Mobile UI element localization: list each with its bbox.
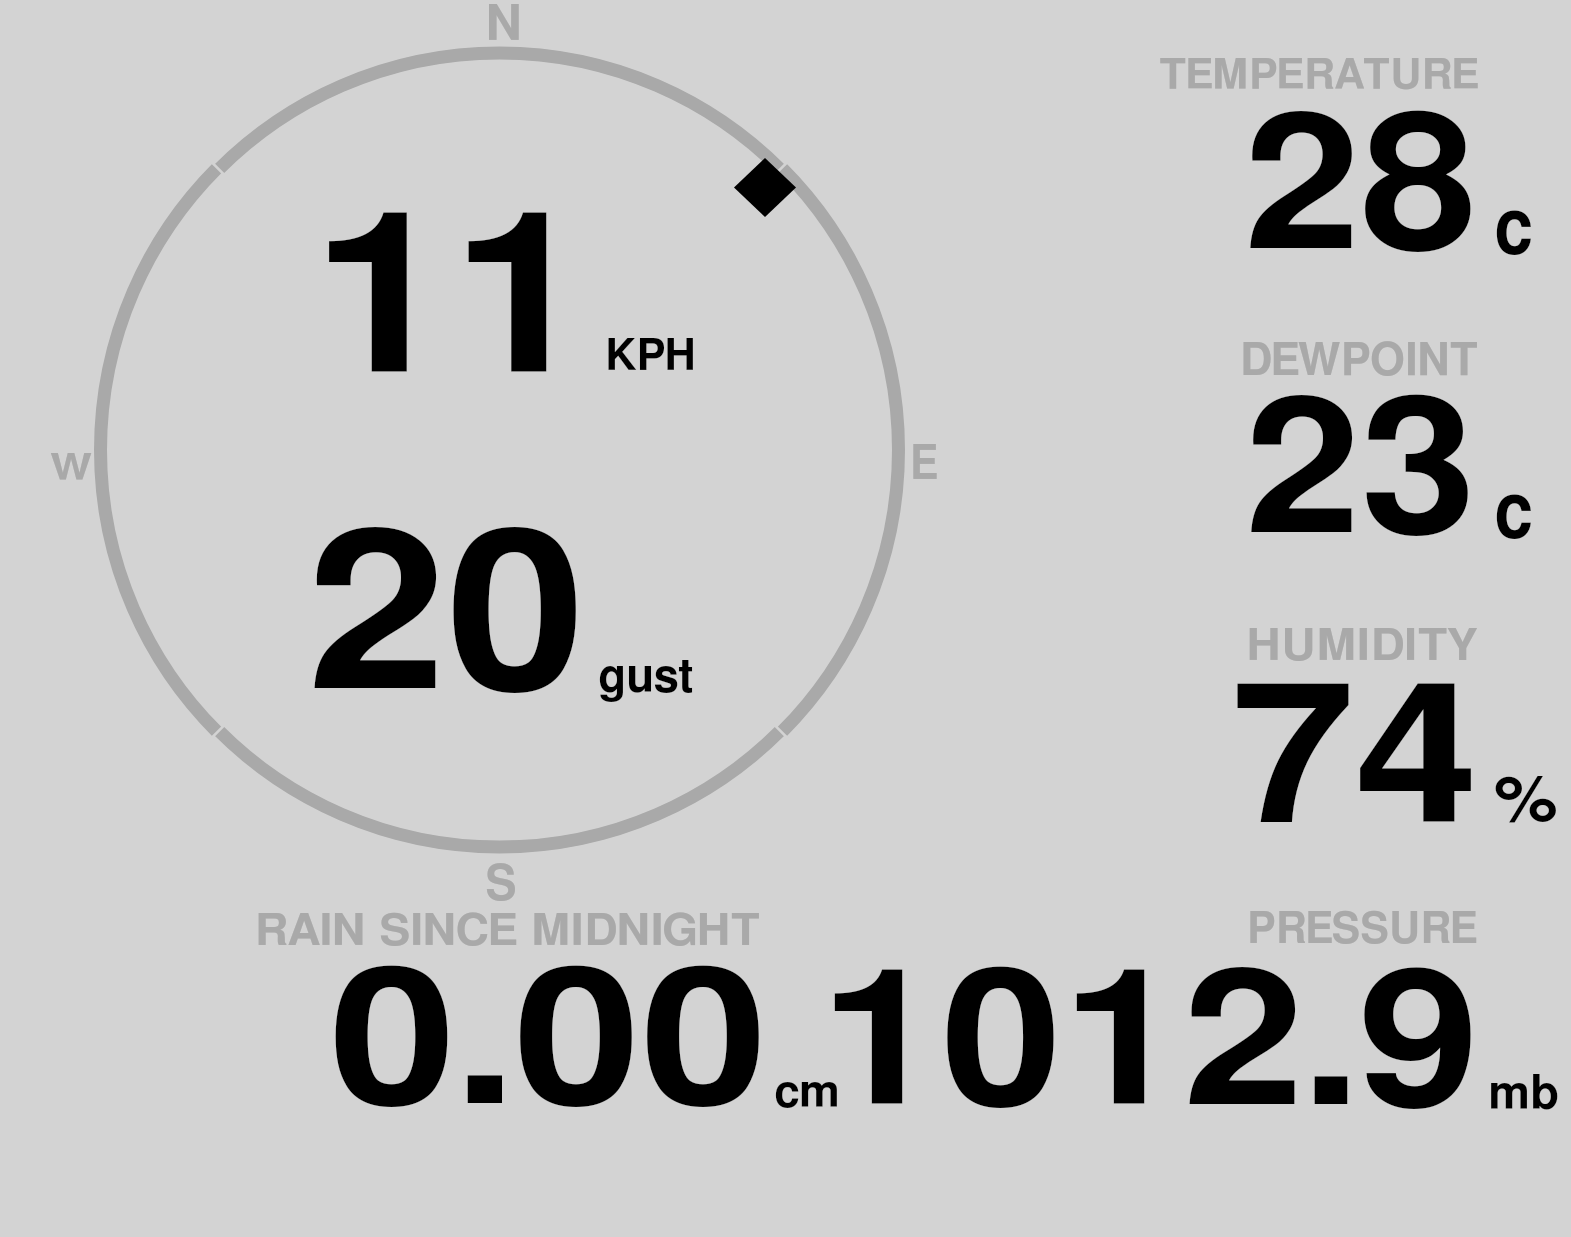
staticText: E <box>910 441 939 488</box>
staticText: 0.00 <box>329 951 768 1141</box>
staticText: % <box>1494 770 1559 834</box>
staticText: KPH <box>605 335 697 379</box>
staticText: 23 <box>1245 381 1476 570</box>
staticText: W <box>50 451 93 488</box>
staticText: 11 <box>312 193 591 417</box>
staticText: HUMIDITY <box>1246 625 1478 669</box>
staticText: DEWPOINT <box>1240 339 1479 383</box>
button[interactable]: PRESSURE <box>820 900 1571 1130</box>
button[interactable]: TEMPERATURE <box>1130 40 1571 280</box>
staticText: 20 <box>307 510 586 732</box>
staticText: mb <box>1488 1071 1560 1118</box>
staticText: N <box>485 1 523 50</box>
staticText: RAIN SINCE MIDNIGHT <box>255 910 761 953</box>
button[interactable]: DEWPOINT <box>1130 325 1571 565</box>
staticText: c <box>1494 475 1533 553</box>
button[interactable]: RAIN SINCE MIDNIGHT <box>240 900 850 1130</box>
staticText: 1012.9 <box>820 953 1479 1142</box>
button[interactable]: Wind from north-east <box>734 158 796 217</box>
staticText: PRESSURE <box>1247 909 1478 952</box>
staticText: S <box>485 861 518 910</box>
button[interactable]: HUMIDITY <box>1130 610 1571 850</box>
staticText: TEMPERATURE <box>1159 55 1480 97</box>
staticText: gust <box>598 655 694 702</box>
staticText: c <box>1494 191 1533 269</box>
staticText: 74 <box>1231 667 1479 861</box>
staticText: 28 <box>1244 97 1478 286</box>
button[interactable]: Wind speed and direction dial <box>40 0 960 910</box>
staticText: cm <box>774 1071 840 1116</box>
